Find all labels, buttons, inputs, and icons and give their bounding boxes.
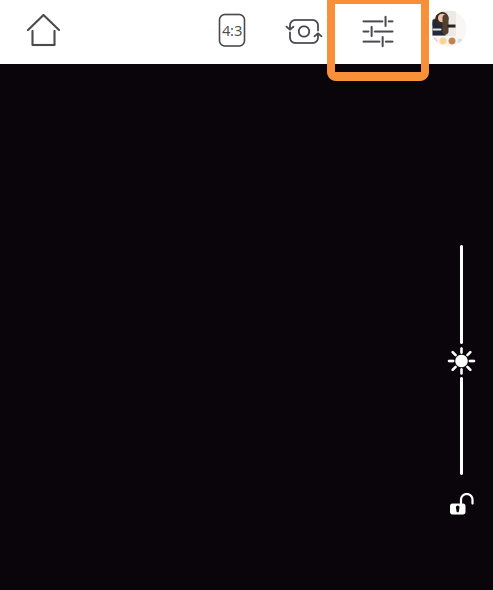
button[interactable]: 4:3 [207,2,256,58]
button[interactable]: Adjustments [327,0,429,81]
button[interactable]: Flip camera [277,6,331,57]
staticText: 4:3 [222,20,242,40]
button[interactable]: Home [14,1,73,59]
button[interactable]: Profile [420,0,476,56]
button[interactable]: Lock exposure [441,485,485,527]
